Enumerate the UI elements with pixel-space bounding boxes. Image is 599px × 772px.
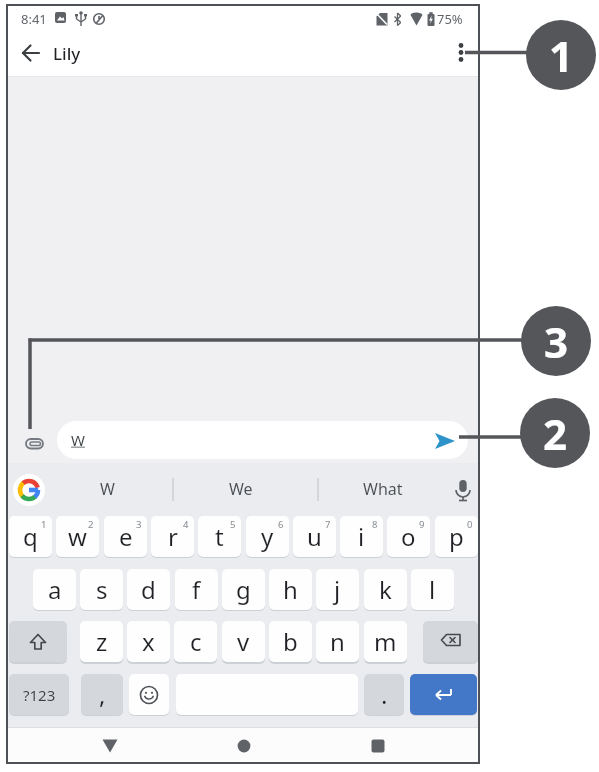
staticText: s [96, 573, 108, 606]
button[interactable]: i [340, 516, 383, 557]
button[interactable] [13, 474, 45, 506]
button[interactable]: d [127, 569, 170, 610]
staticText: 3 [136, 518, 142, 531]
button[interactable]: . [364, 674, 404, 715]
staticText: k [379, 573, 392, 606]
button[interactable]: v [222, 621, 265, 662]
staticText: . [381, 678, 388, 711]
staticText: 1 [41, 518, 47, 531]
button[interactable]: W [57, 421, 468, 459]
staticText: e [119, 520, 133, 553]
staticText: w [68, 520, 87, 553]
staticText: 4 [183, 518, 189, 531]
button[interactable] [363, 730, 393, 760]
button[interactable]: s [80, 569, 123, 610]
staticText: ?123 [23, 685, 56, 705]
button[interactable]: t [198, 516, 241, 557]
button[interactable]: 2 [520, 398, 590, 468]
button[interactable]: a [33, 569, 76, 610]
button[interactable]: , [81, 674, 123, 715]
staticText: l [429, 573, 436, 606]
staticText: j [334, 573, 341, 606]
button[interactable] [445, 36, 477, 68]
button[interactable]: We [176, 463, 306, 515]
staticText: r [168, 520, 178, 553]
staticText: What [363, 478, 403, 500]
staticText: 8 [372, 518, 378, 531]
staticText: 75% [437, 10, 463, 28]
staticText: d [141, 573, 156, 606]
button[interactable] [423, 621, 478, 662]
staticText: q [23, 520, 38, 553]
staticText: 2 [543, 405, 568, 462]
staticText: 5 [230, 518, 236, 531]
staticText: m [374, 625, 397, 658]
staticText: W [71, 430, 85, 450]
staticText: o [401, 520, 416, 553]
staticText: 3 [544, 313, 569, 370]
staticText: 0 [467, 518, 473, 531]
button[interactable]: w [56, 516, 99, 557]
staticText: h [283, 573, 298, 606]
button[interactable]: 1 [526, 20, 596, 90]
button[interactable] [9, 621, 67, 662]
staticText: 7 [325, 518, 331, 531]
button[interactable]: h [269, 569, 312, 610]
button[interactable]: b [269, 621, 312, 662]
staticText: 1 [549, 27, 574, 84]
staticText: , [99, 678, 106, 711]
button[interactable]: q [9, 516, 52, 557]
staticText: 2 [88, 518, 94, 531]
button[interactable]: What [320, 463, 445, 515]
staticText: z [96, 625, 108, 658]
staticText: We [229, 478, 253, 500]
staticText: x [142, 625, 155, 658]
staticText: W [100, 478, 115, 500]
staticText: c [190, 625, 202, 658]
staticText: 8:41 [21, 10, 47, 28]
button[interactable]: k [364, 569, 407, 610]
staticText: u [307, 520, 322, 553]
button[interactable]: j [316, 569, 359, 610]
button[interactable]: c [174, 621, 217, 662]
staticText: b [283, 625, 298, 658]
staticText: p [449, 520, 464, 553]
button[interactable]: z [80, 621, 123, 662]
button[interactable]: n [316, 621, 359, 662]
button[interactable]: u [293, 516, 336, 557]
button[interactable]: y [246, 516, 289, 557]
button[interactable]: l [411, 569, 454, 610]
button[interactable]: W [48, 463, 166, 515]
button[interactable]: 3 [521, 306, 591, 376]
button[interactable]: ?123 [9, 674, 69, 715]
staticText: f [192, 573, 201, 606]
button[interactable] [229, 730, 259, 760]
staticText: 6 [278, 518, 284, 531]
staticText: g [236, 573, 251, 606]
button[interactable]: g [222, 569, 265, 610]
button[interactable]: m [364, 621, 407, 662]
staticText: t [215, 520, 224, 553]
button[interactable] [95, 730, 125, 760]
button[interactable]: e [104, 516, 147, 557]
button[interactable] [129, 674, 169, 715]
staticText: i [358, 520, 365, 553]
staticText: v [237, 625, 250, 658]
staticText: a [48, 573, 62, 606]
button[interactable]: r [151, 516, 194, 557]
button[interactable] [435, 433, 457, 451]
button[interactable] [23, 434, 49, 460]
button[interactable]: x [127, 621, 170, 662]
staticText: n [330, 625, 345, 658]
staticText: 9 [419, 518, 425, 531]
button[interactable] [410, 674, 477, 715]
button[interactable]: o [387, 516, 430, 557]
staticText: y [261, 520, 274, 553]
button[interactable]: p [435, 516, 478, 557]
button[interactable] [21, 43, 57, 79]
button[interactable]: f [175, 569, 218, 610]
staticText: Lily [53, 42, 81, 65]
